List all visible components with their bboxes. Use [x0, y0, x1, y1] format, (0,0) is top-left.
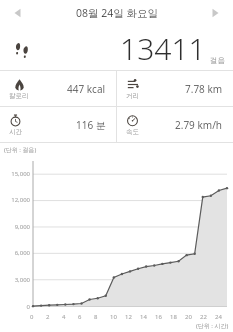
staticText: 8	[94, 313, 98, 321]
staticText: 12,000	[11, 196, 30, 204]
button[interactable]: Distance	[117, 71, 233, 106]
staticText: 걸음	[210, 56, 225, 65]
staticText: 14	[140, 313, 147, 321]
staticText: 7.78 km	[185, 82, 223, 96]
other: Calories	[9, 78, 29, 100]
staticText: 칼로리	[9, 92, 29, 100]
staticText: 22	[200, 313, 207, 321]
staticText: 12	[125, 313, 132, 321]
staticText: 2	[46, 313, 50, 321]
staticText: 거리	[126, 92, 139, 100]
staticText: 08월 24일 화요일	[76, 6, 158, 20]
staticText: 9,000	[14, 223, 30, 231]
staticText: 116 분	[76, 118, 106, 132]
staticText: (단위 : 걸음)	[4, 146, 37, 154]
staticText: 3,000	[14, 276, 30, 284]
staticText: 6	[78, 313, 82, 321]
staticText: 0	[30, 313, 34, 321]
other: Distance	[126, 78, 139, 100]
other: Time	[9, 114, 22, 136]
button[interactable]: Calories	[0, 71, 116, 106]
other: Speed	[126, 114, 139, 136]
staticText: 0	[26, 303, 30, 311]
button[interactable]: Time	[0, 107, 116, 142]
staticText: 시간	[9, 128, 22, 136]
staticText: 2.79 km/h	[175, 118, 223, 132]
staticText: 13411	[120, 28, 206, 69]
staticText: 속도	[126, 128, 139, 136]
button[interactable]: 13411	[0, 26, 233, 70]
staticText: 4	[62, 313, 66, 321]
staticText: 447 kcal	[67, 82, 106, 96]
staticText: 20	[185, 313, 192, 321]
staticText: 16	[155, 313, 162, 321]
staticText: (단위 : 시간)	[196, 322, 229, 330]
button[interactable]: Speed	[117, 107, 233, 142]
staticText: 10	[110, 313, 117, 321]
staticText: 15,000	[11, 170, 30, 178]
staticText: 6,000	[14, 249, 30, 257]
button[interactable]: Next day	[203, 1, 227, 25]
staticText: 18	[170, 313, 177, 321]
button[interactable]: Previous day	[6, 1, 30, 25]
staticText: 24	[215, 313, 222, 321]
